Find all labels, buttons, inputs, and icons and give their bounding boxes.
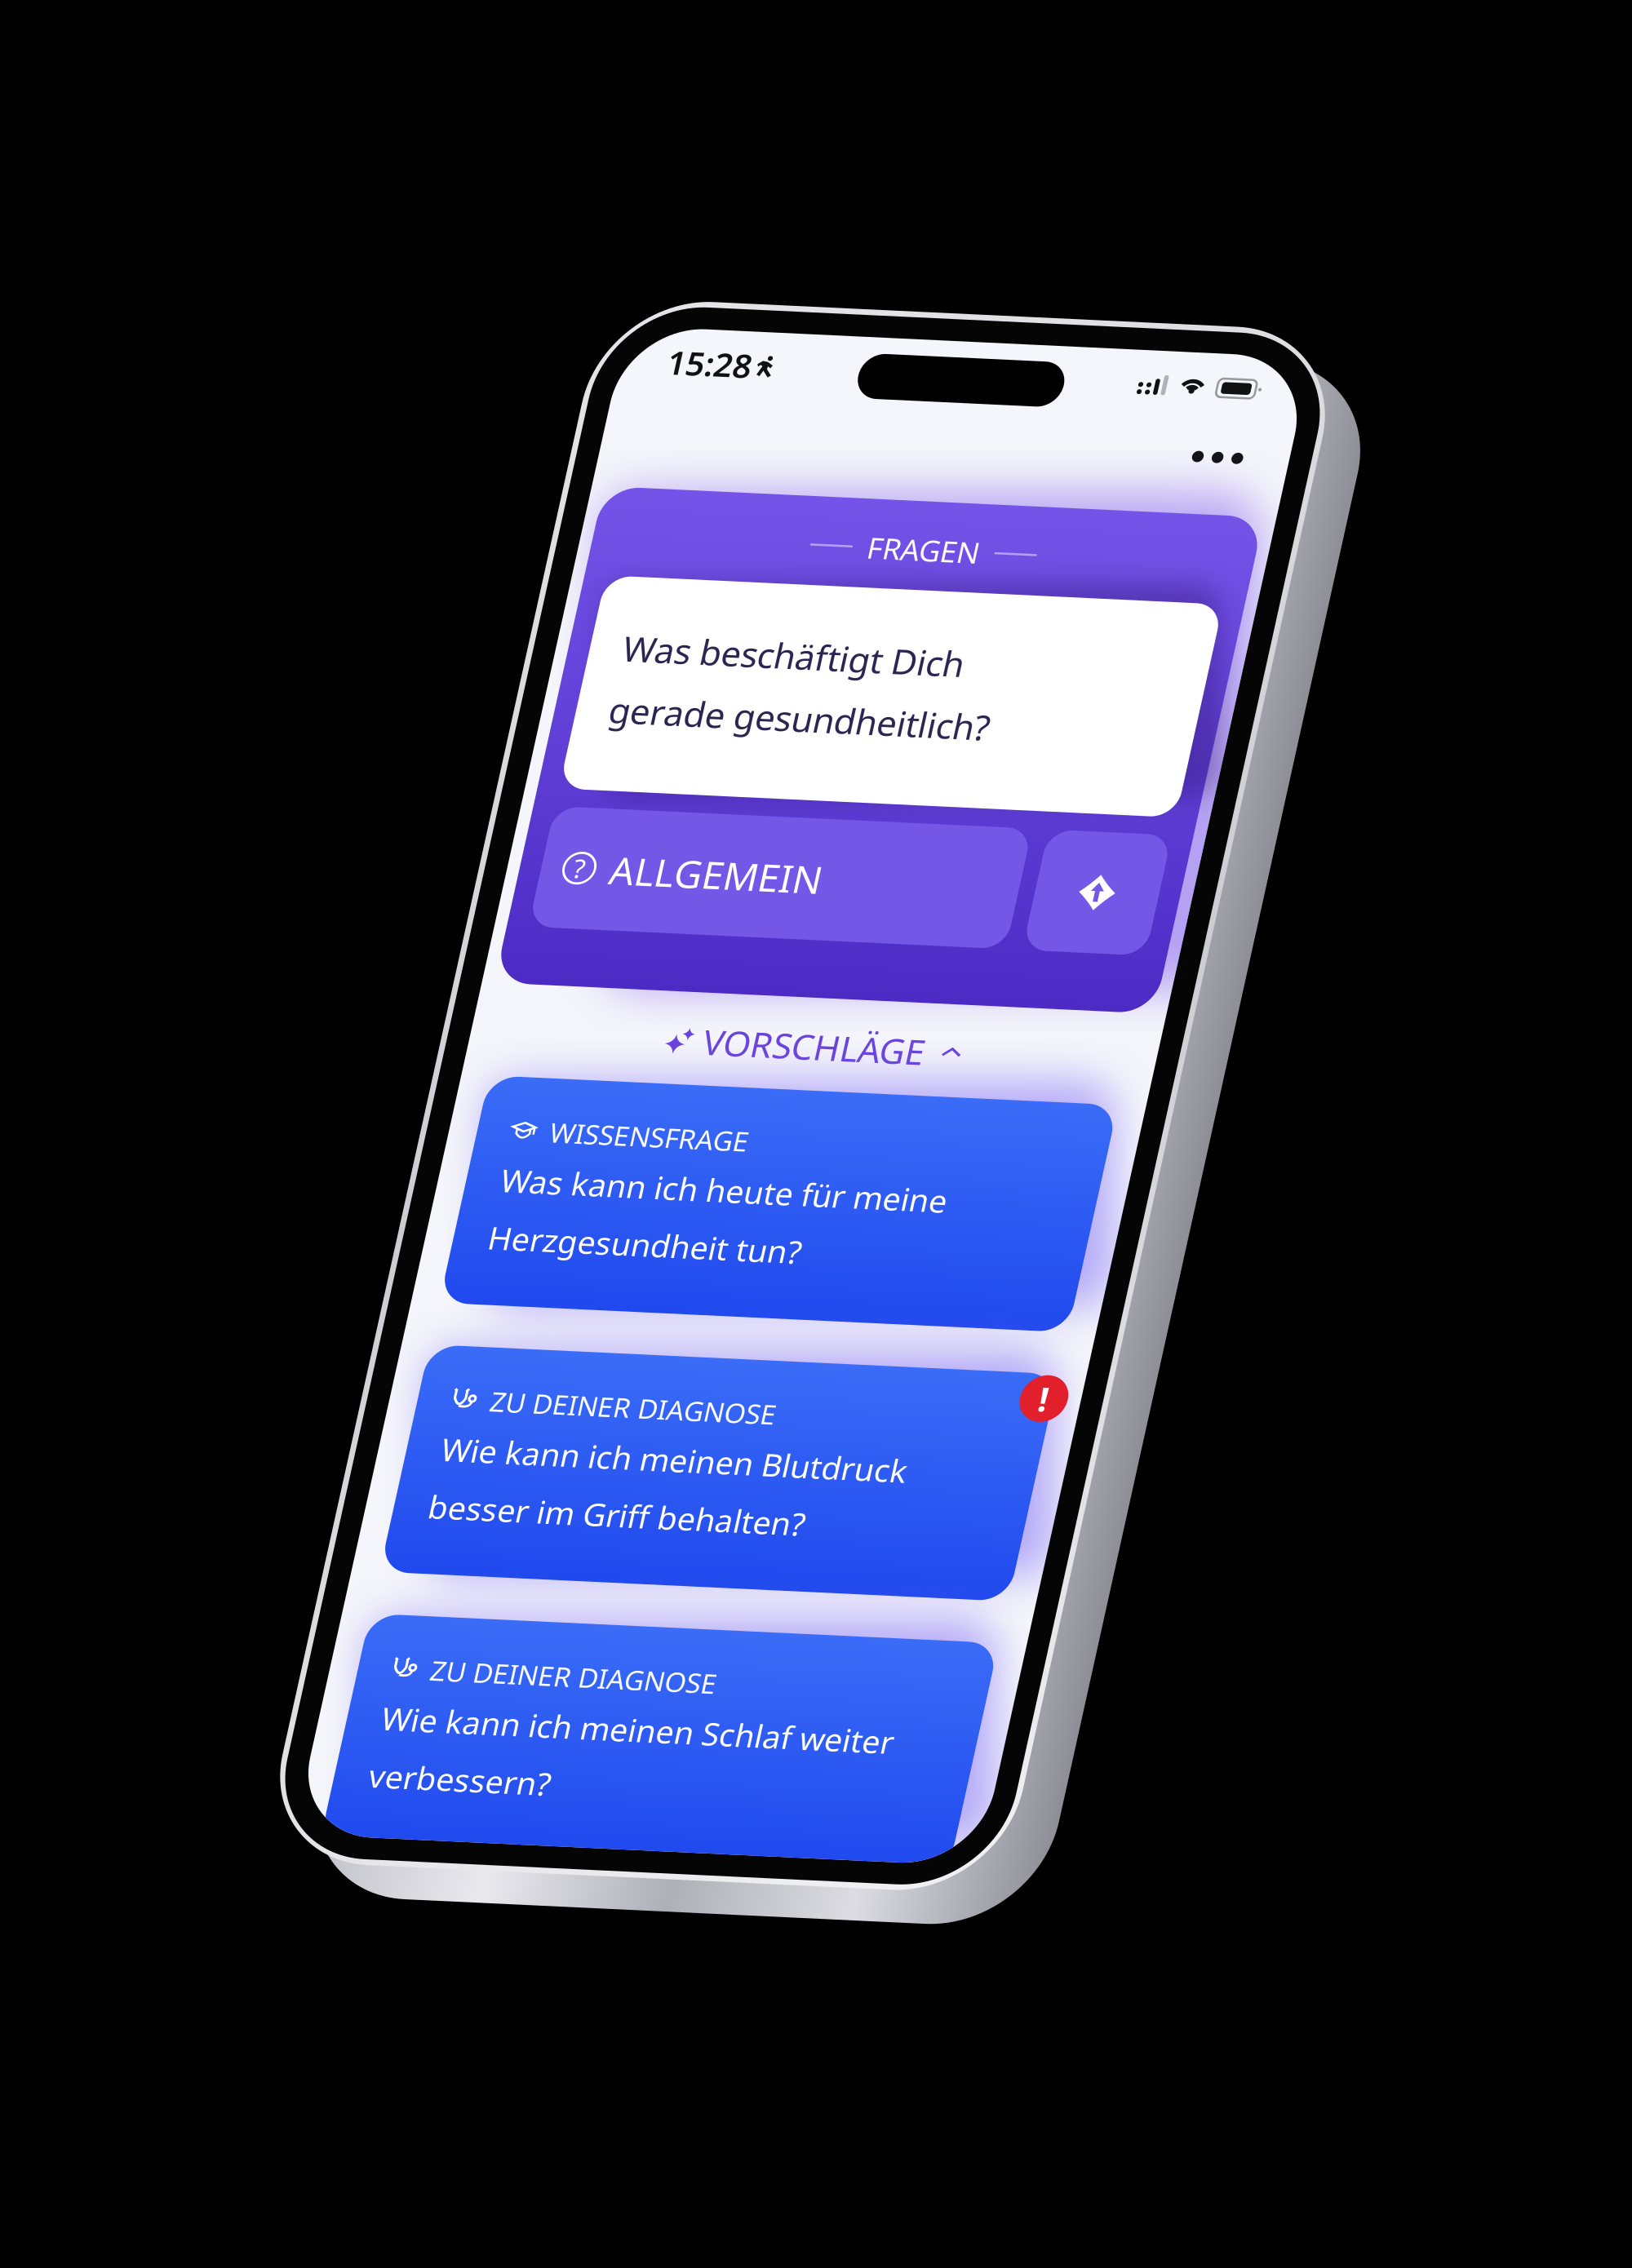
- button[interactable]: ?: [61, 514, 535, 637]
- staticText: Wie kann ich meinen Schlaf weiter verbes…: [90, 1418, 598, 1518]
- button[interactable]: ZU DEINER DIAGNOSE: [55, 1061, 680, 1292]
- button[interactable]: WISSENSFRAGE: [55, 788, 680, 1019]
- staticText: ZU DEINER DIAGNOSE: [127, 1371, 411, 1407]
- staticText: Wie kann ich meinen Blutdruck besser im …: [90, 1145, 552, 1245]
- staticText: !: [666, 1064, 676, 1109]
- staticText: Was kann ich heute für meine Herzgesundh…: [90, 871, 533, 972]
- button[interactable]: Senden: [552, 514, 674, 637]
- button[interactable]: ZU DEINER DIAGNOSE: [55, 1335, 680, 1565]
- button[interactable]: VORSCHLÄGE: [221, 704, 514, 783]
